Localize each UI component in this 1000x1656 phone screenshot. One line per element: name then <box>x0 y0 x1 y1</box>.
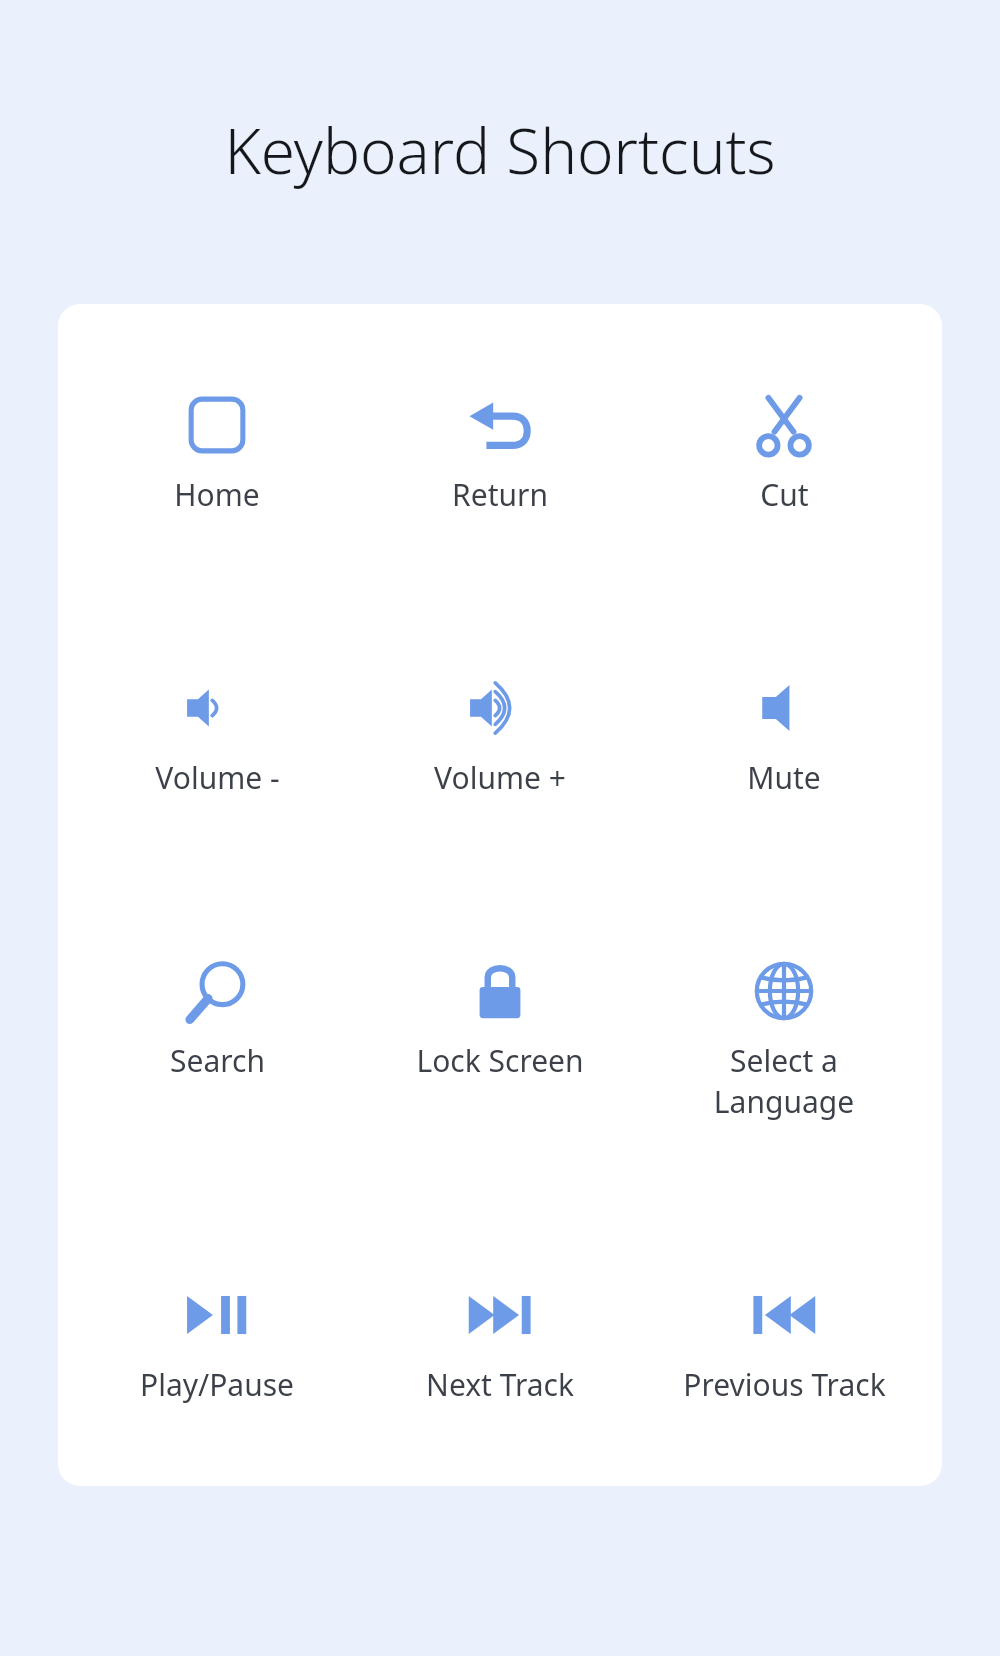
staticText: Play/Pause <box>140 1364 294 1405</box>
staticText: Return <box>452 474 548 515</box>
staticText: Next Track <box>426 1364 574 1405</box>
staticText: Previous Track <box>683 1364 886 1405</box>
button[interactable]: Cut <box>659 386 909 517</box>
button[interactable]: Next track <box>375 1276 625 1407</box>
button[interactable]: Volume up <box>375 669 625 800</box>
button[interactable]: Return <box>375 386 625 517</box>
staticText: Lock Screen <box>416 1040 584 1081</box>
staticText: Search <box>170 1040 265 1081</box>
button[interactable]: Lock screen <box>375 952 625 1083</box>
button[interactable]: Search <box>92 952 342 1083</box>
staticText: Volume - <box>155 757 280 798</box>
button[interactable]: Play or pause <box>92 1276 342 1407</box>
button[interactable]: Mute <box>659 669 909 800</box>
button[interactable]: Home <box>92 386 342 517</box>
staticText: Cut <box>760 474 809 515</box>
staticText: Mute <box>747 757 821 798</box>
staticText: Select a Language <box>659 1040 909 1122</box>
staticText: Keyboard Shortcuts <box>0 108 1000 192</box>
staticText: Home <box>174 474 260 515</box>
button[interactable]: Previous track <box>659 1276 909 1407</box>
button[interactable]: Volume down <box>92 669 342 800</box>
button[interactable]: Select a language <box>659 952 909 1124</box>
staticText: Volume + <box>434 757 566 798</box>
